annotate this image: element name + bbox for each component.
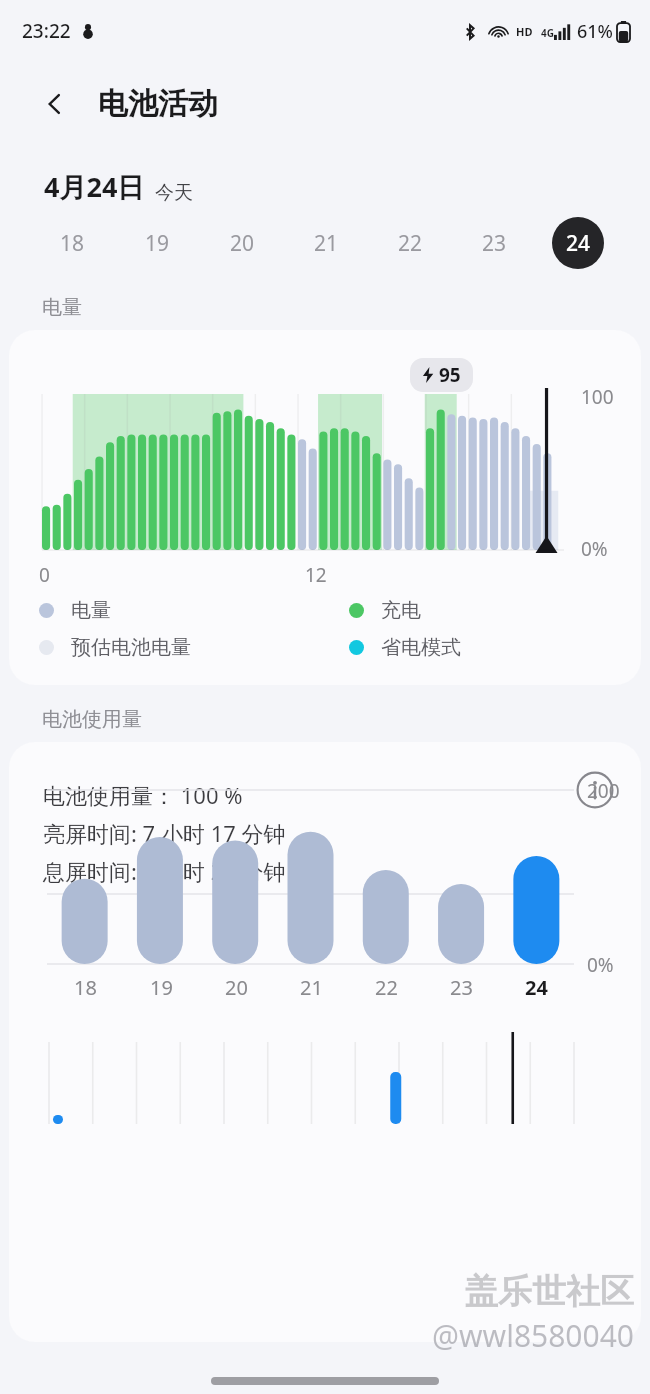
staticText: 24 xyxy=(566,229,591,258)
staticText: 100 xyxy=(581,384,614,410)
button[interactable]: 100 xyxy=(9,330,641,685)
button[interactable]: 23 xyxy=(452,212,536,274)
staticText: 4月24日 xyxy=(44,168,145,205)
staticText: 电池活动 xyxy=(98,85,218,123)
staticText: 盖乐世社区 xyxy=(464,1270,634,1313)
staticText: 电量 xyxy=(42,295,82,320)
staticText: 21 xyxy=(314,229,339,258)
staticText: 22 xyxy=(398,229,423,258)
staticText: 0% xyxy=(587,952,614,978)
staticText: 电量 xyxy=(71,598,111,623)
staticText: 61% xyxy=(577,19,613,44)
staticText: 18 xyxy=(60,229,85,258)
staticText: 23 xyxy=(482,229,507,258)
button[interactable]: Information xyxy=(571,766,619,814)
staticText: 23:22 xyxy=(22,18,71,44)
button[interactable]: 22 xyxy=(368,212,452,274)
staticText: 18 xyxy=(74,974,97,1001)
button[interactable]: 20 xyxy=(200,212,284,274)
button[interactable]: 18 xyxy=(30,212,115,274)
button[interactable]: 21 xyxy=(284,212,368,274)
button[interactable]: 19 xyxy=(115,212,200,274)
staticText: 充电 xyxy=(381,598,421,623)
staticText: 0% xyxy=(581,536,608,562)
staticText: 21 xyxy=(300,974,323,1001)
staticText: HD xyxy=(516,24,533,39)
staticText: 12 xyxy=(305,562,327,588)
staticText: 19 xyxy=(145,229,170,258)
staticText: 23 xyxy=(450,974,473,1001)
staticText: 息屏时间: 6 小时 23 分钟 xyxy=(43,856,286,886)
staticText: 电池使用量 xyxy=(42,707,142,732)
button[interactable]: Back xyxy=(32,81,78,127)
button[interactable]: 24 xyxy=(536,212,620,274)
staticText: 今天 xyxy=(155,181,193,205)
staticText: 19 xyxy=(150,974,173,1001)
staticText: 200 xyxy=(587,778,620,804)
staticText: 4G xyxy=(541,26,554,40)
staticText: 亮屏时间: 7 小时 17 分钟 xyxy=(43,818,286,848)
staticText: 20 xyxy=(230,229,255,258)
staticText: 0 xyxy=(39,562,50,588)
staticText: 省电模式 xyxy=(381,635,461,660)
staticText: 电池使用量： 100 % xyxy=(43,780,243,810)
staticText: @wwl8580040 xyxy=(432,1315,634,1356)
staticText: 预估电池电量 xyxy=(71,635,191,660)
staticText: 24 xyxy=(525,974,548,1001)
staticText: 20 xyxy=(225,974,248,1001)
staticText: 22 xyxy=(375,974,398,1001)
staticText: 95 xyxy=(439,362,461,388)
